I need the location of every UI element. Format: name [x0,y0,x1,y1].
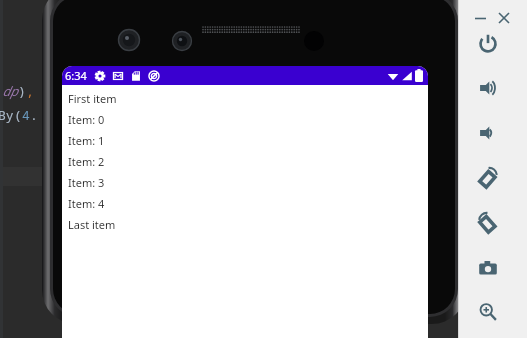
staticText: 6:34 [65,68,87,83]
button[interactable]: Item: 0 [68,109,428,130]
staticText: ) [18,82,26,100]
button[interactable]: Item: 2 [68,151,428,172]
button[interactable]: Item: 4 [68,193,428,214]
button[interactable]: Take screenshot [473,253,503,283]
staticText: Item: 0 [68,112,105,127]
button[interactable]: Item: 1 [68,130,428,151]
staticText: Item: 3 [68,175,105,190]
button[interactable]: Power [473,28,503,58]
staticText: 4 [22,106,30,124]
staticText: By [0,106,14,124]
staticText: Last item [68,217,116,232]
staticText: First item [68,91,117,106]
button[interactable]: Volume down [473,118,503,148]
button[interactable]: Last item [68,214,428,235]
button[interactable]: Volume up [473,73,503,103]
button[interactable]: Rotate left [473,163,503,193]
button[interactable]: Zoom [473,297,503,327]
staticText: . [30,106,38,124]
staticText: Item: 4 [68,196,105,211]
staticText: Item: 1 [68,133,105,148]
staticText: dp [2,82,18,100]
staticText: , [26,82,34,100]
button[interactable]: Close [496,10,512,26]
button[interactable]: First item [68,88,428,109]
button[interactable]: Minimize [472,10,488,26]
staticText: Item: 2 [68,154,105,169]
button[interactable]: Rotate right [473,208,503,238]
button[interactable]: Item: 3 [68,172,428,193]
staticText: ( [14,106,22,124]
